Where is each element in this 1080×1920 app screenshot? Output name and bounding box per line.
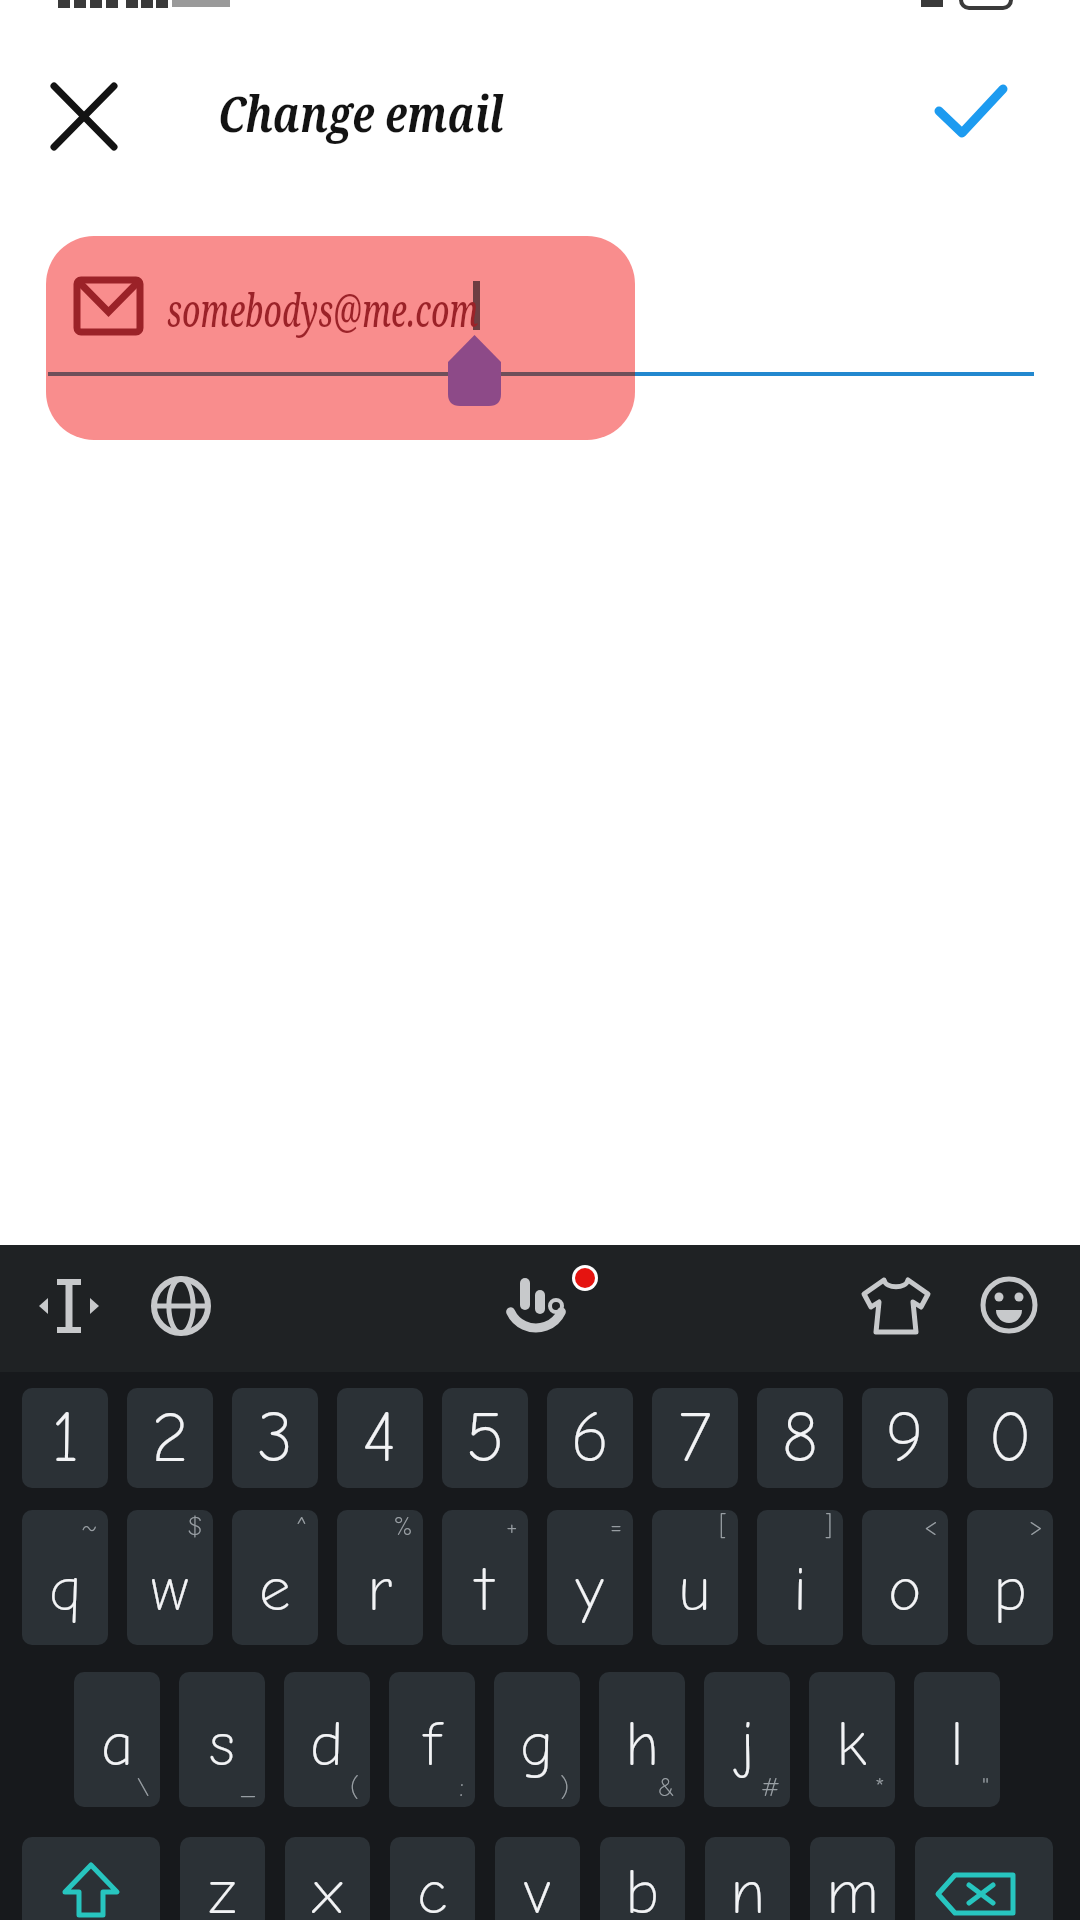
staticText: 1	[52, 1398, 79, 1479]
staticText: z	[209, 1857, 236, 1920]
staticText: r	[367, 1554, 393, 1625]
staticText: l	[950, 1709, 964, 1780]
staticText: \	[136, 1773, 150, 1803]
staticText: 7	[679, 1398, 712, 1479]
staticText: 3	[258, 1398, 293, 1479]
staticText: j	[740, 1709, 755, 1780]
staticText: $	[187, 1512, 203, 1542]
button[interactable]: m	[810, 1837, 895, 1920]
button[interactable]: k	[809, 1672, 895, 1807]
staticText: %	[394, 1512, 413, 1542]
button[interactable]: f	[389, 1672, 475, 1807]
button[interactable]: d	[284, 1672, 370, 1807]
staticText: [	[719, 1512, 728, 1542]
button[interactable]	[851, 1261, 941, 1351]
staticText: 2	[152, 1398, 188, 1479]
button[interactable]: i	[757, 1510, 843, 1645]
staticText: &	[658, 1773, 675, 1803]
staticText: <	[924, 1512, 938, 1542]
staticText: s	[209, 1709, 235, 1780]
button[interactable]: w	[127, 1510, 213, 1645]
button[interactable]: l	[914, 1672, 1000, 1807]
staticText: :	[459, 1773, 465, 1803]
button[interactable]: r	[337, 1510, 423, 1645]
button[interactable]: j	[704, 1672, 790, 1807]
staticText: v	[525, 1857, 551, 1920]
staticText: q	[49, 1554, 82, 1625]
staticText: d	[310, 1709, 344, 1780]
button[interactable]: p	[967, 1510, 1053, 1645]
button[interactable]	[915, 1837, 1053, 1920]
button[interactable]	[490, 1250, 610, 1370]
staticText: e	[259, 1554, 291, 1625]
button[interactable]: g	[494, 1672, 580, 1807]
staticText: t	[476, 1554, 494, 1625]
staticText: y	[576, 1554, 604, 1625]
staticText: +	[506, 1512, 518, 1542]
staticText: x	[313, 1857, 342, 1920]
staticText: o	[888, 1554, 922, 1625]
button[interactable]: 8	[757, 1388, 843, 1488]
staticText: n	[730, 1857, 766, 1920]
staticText: f	[423, 1709, 441, 1780]
staticText: ]	[824, 1512, 833, 1542]
staticText: #	[761, 1773, 780, 1803]
button[interactable]: b	[600, 1837, 685, 1920]
staticText: Change email	[218, 80, 504, 147]
button[interactable]	[919, 62, 1019, 162]
button[interactable]: 3	[232, 1388, 318, 1488]
staticText: m	[826, 1857, 880, 1920]
button[interactable]: a	[74, 1672, 160, 1807]
staticText: 6	[571, 1398, 609, 1479]
button[interactable]: 6	[547, 1388, 633, 1488]
staticText: 5	[466, 1398, 504, 1479]
staticText: "	[982, 1773, 990, 1803]
button[interactable]	[34, 66, 134, 166]
button[interactable]: t	[442, 1510, 528, 1645]
staticText: _	[241, 1773, 255, 1803]
staticText: *	[875, 1773, 885, 1803]
staticText: 0	[989, 1398, 1032, 1479]
staticText: p	[993, 1554, 1027, 1625]
button[interactable]: q	[22, 1510, 108, 1645]
button[interactable]: u	[652, 1510, 738, 1645]
staticText: somebodys@me.com	[167, 278, 479, 341]
button[interactable]	[24, 1261, 114, 1351]
staticText: h	[625, 1709, 660, 1780]
button[interactable]	[964, 1261, 1054, 1351]
staticText: 4	[363, 1398, 397, 1479]
staticText: )	[560, 1773, 570, 1803]
button[interactable]: 2	[127, 1388, 213, 1488]
staticText: u	[678, 1554, 712, 1625]
button[interactable]	[136, 1261, 226, 1351]
staticText: i	[793, 1554, 808, 1625]
button[interactable]: x	[285, 1837, 370, 1920]
button[interactable]: s	[179, 1672, 265, 1807]
button[interactable]	[22, 1837, 160, 1920]
button[interactable]: n	[705, 1837, 790, 1920]
button[interactable]: e	[232, 1510, 318, 1645]
button[interactable]: 4	[337, 1388, 423, 1488]
staticText: b	[625, 1857, 660, 1920]
staticText: w	[151, 1554, 189, 1625]
button[interactable]: 7	[652, 1388, 738, 1488]
button[interactable]: c	[390, 1837, 475, 1920]
staticText: k	[836, 1709, 868, 1780]
staticText: ^	[295, 1512, 308, 1542]
button[interactable]: o	[862, 1510, 948, 1645]
button[interactable]: h	[599, 1672, 685, 1807]
staticText: =	[610, 1512, 623, 1542]
button[interactable]: 9	[862, 1388, 948, 1488]
button[interactable]: 0	[967, 1388, 1053, 1488]
button[interactable]: v	[495, 1837, 580, 1920]
staticText: g	[520, 1709, 554, 1780]
staticText: ~	[81, 1512, 98, 1542]
button[interactable]: y	[547, 1510, 633, 1645]
staticText: >	[1029, 1512, 1043, 1542]
button[interactable]: 5	[442, 1388, 528, 1488]
staticText: a	[101, 1709, 134, 1780]
staticText: 9	[886, 1398, 924, 1479]
button[interactable]: z	[180, 1837, 265, 1920]
button[interactable]: 1	[22, 1388, 108, 1488]
staticText: (	[350, 1773, 360, 1803]
